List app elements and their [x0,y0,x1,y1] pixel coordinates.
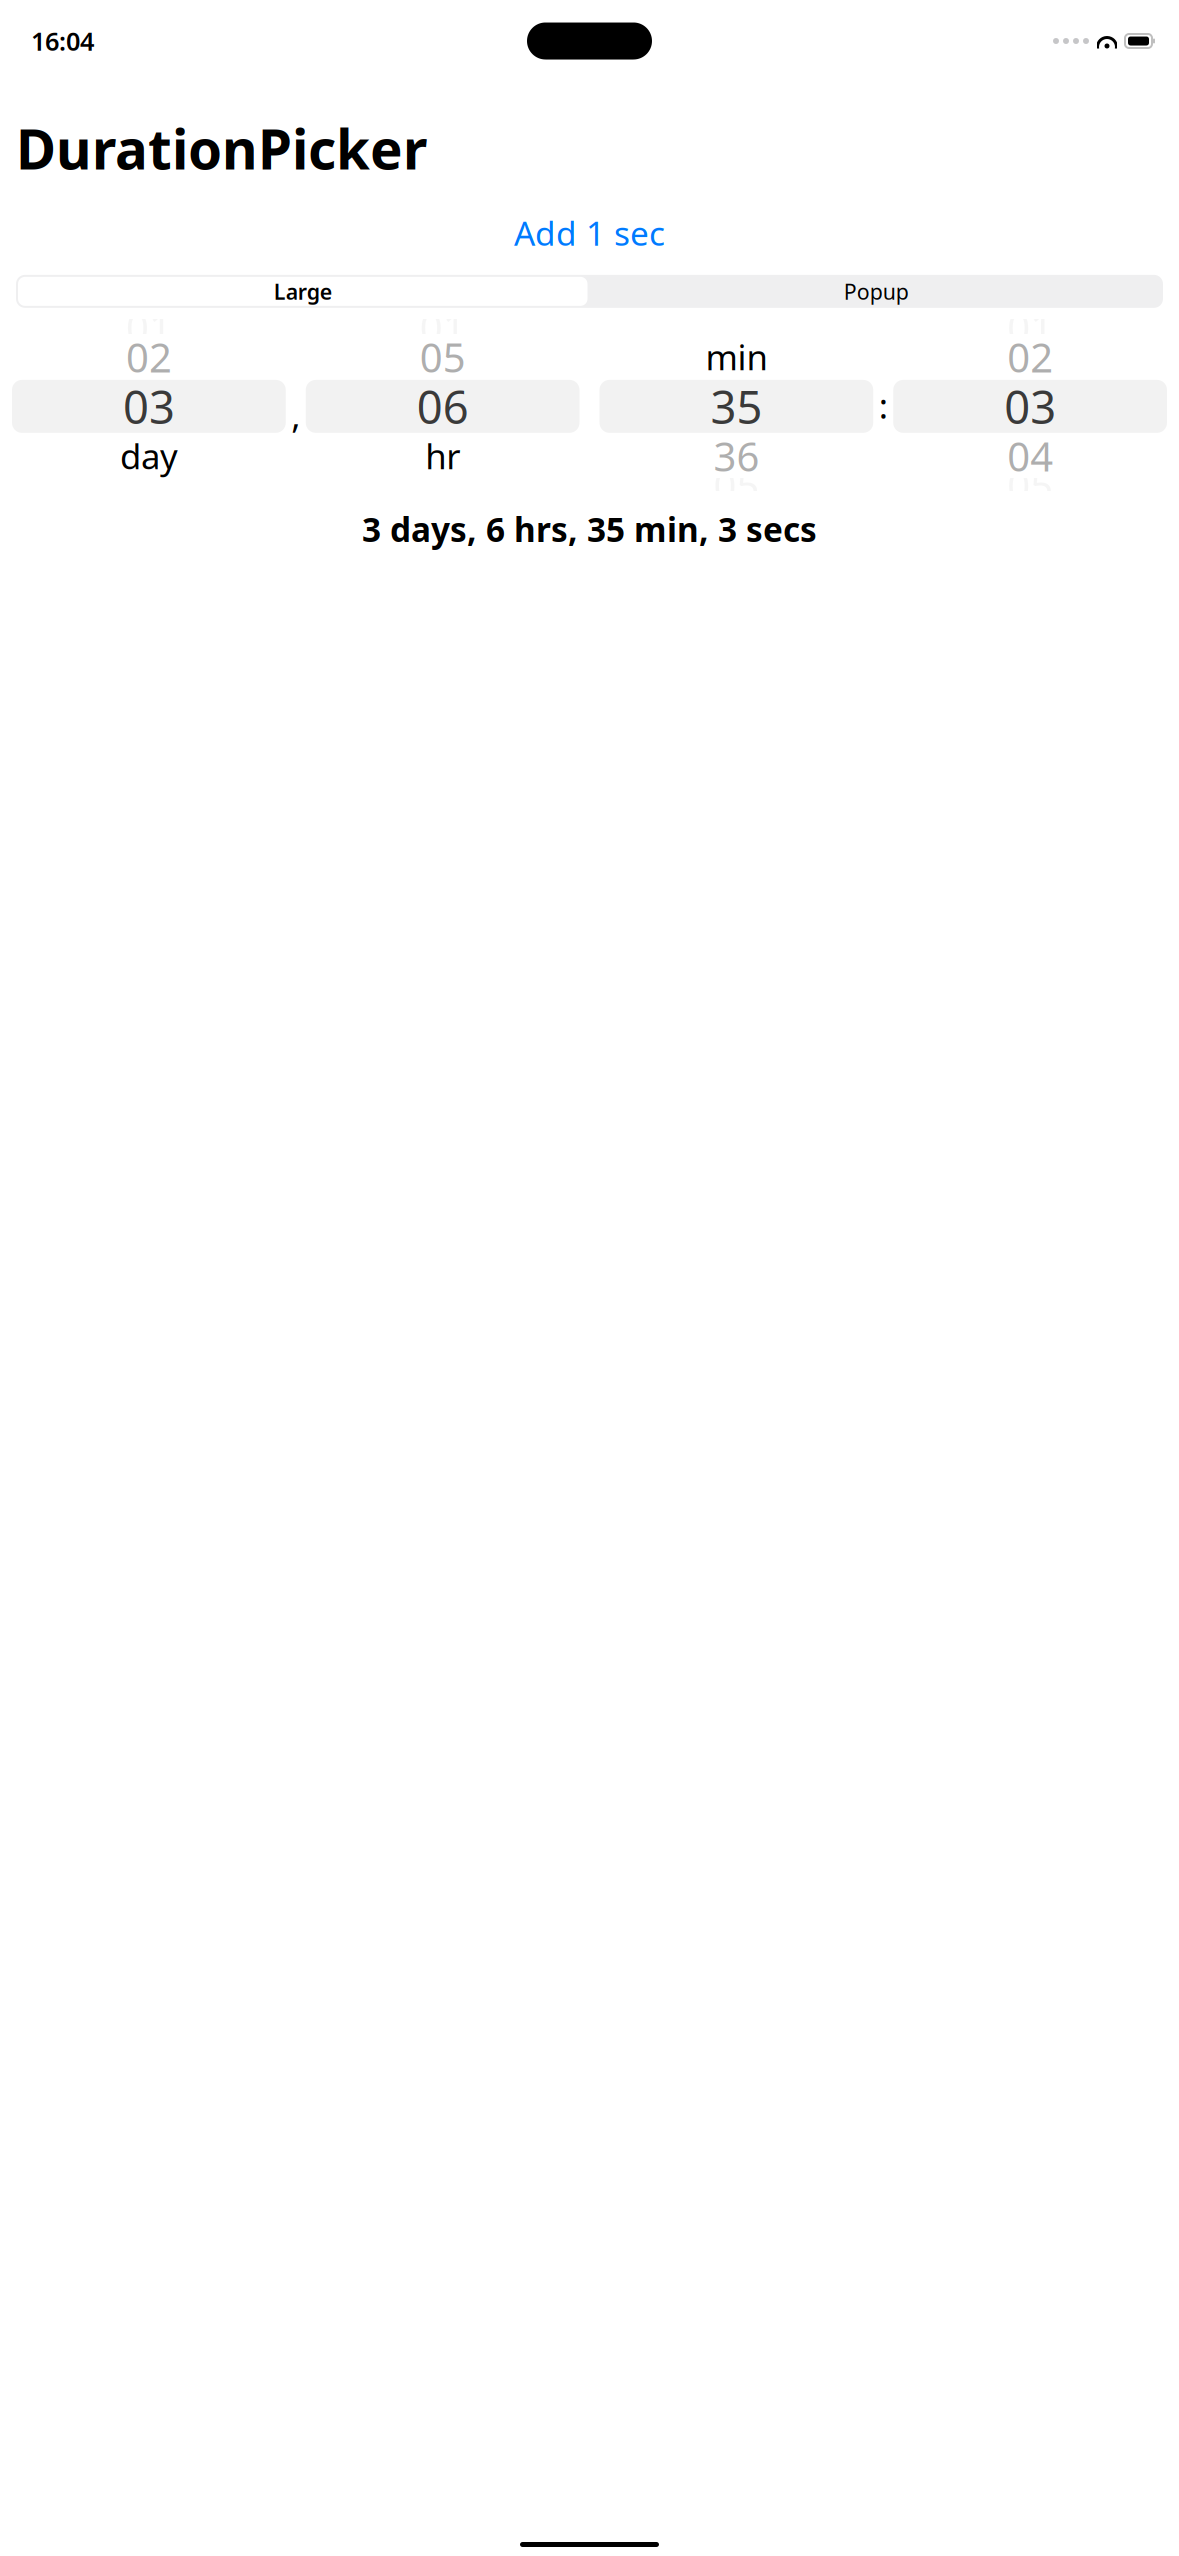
button[interactable]: Large [16,277,589,306]
staticText: 03 [1004,376,1056,436]
button[interactable]: 01 [893,320,1167,491]
staticText: hr [425,433,460,479]
staticText: , [291,392,300,438]
staticText: 06 [417,376,469,436]
staticText: DurationPicker [16,112,427,185]
staticText: 01 [1007,300,1053,353]
staticText: 04 [1007,429,1053,482]
staticText: 3 days, 6 hrs, 35 min, 3 secs [362,507,817,551]
staticText: 05 [713,458,759,511]
staticText: 03 [123,376,175,436]
button[interactable]: Add 1 sec [504,207,675,259]
staticText: 01 [420,300,466,353]
button[interactable]: Popup [589,275,1163,308]
staticText: min [705,334,767,380]
staticText: Popup [844,277,909,305]
staticText: day [120,433,178,479]
staticText: : [879,382,888,428]
staticText: 16:04 [31,24,94,58]
staticText: 02 [126,330,172,383]
staticText: 05 [1007,458,1053,511]
staticText: Add 1 sec [514,211,665,255]
staticText: 05 [420,330,466,383]
button[interactable] [599,320,873,491]
button[interactable]: 01 [306,320,580,491]
staticText: Large [274,277,332,305]
staticText: 01 [126,300,172,353]
staticText: 36 [713,429,759,482]
button[interactable]: 01 [12,320,286,491]
staticText: 35 [710,376,762,436]
staticText: 02 [1007,330,1053,383]
